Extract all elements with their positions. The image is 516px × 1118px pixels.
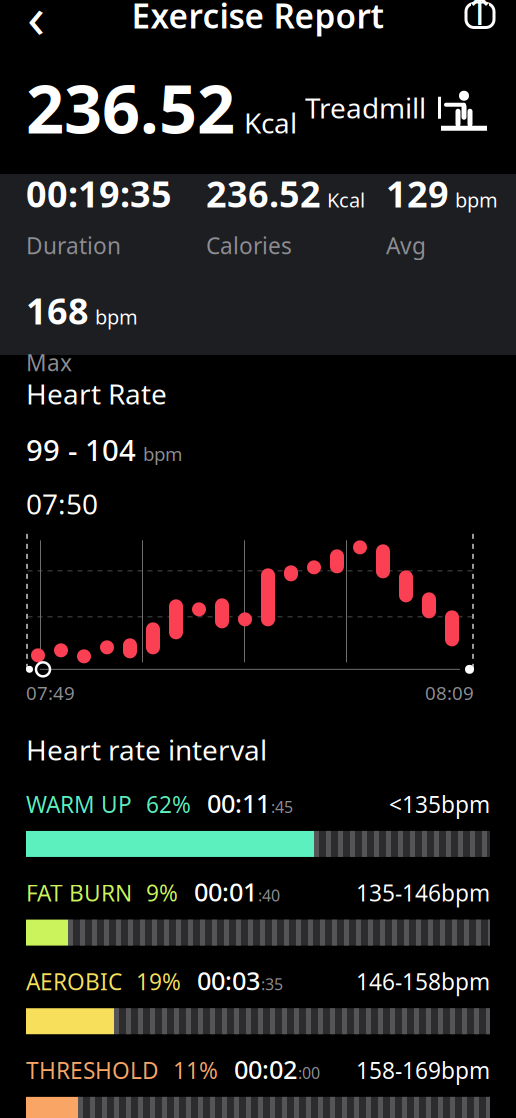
button[interactable]: AEROBIC <box>26 964 490 1034</box>
staticText: 129 <box>386 170 449 217</box>
staticText: :40 <box>258 885 280 906</box>
staticText: 08:09 <box>425 680 474 705</box>
staticText: 00:02 <box>234 1052 297 1086</box>
staticText: bpm <box>455 186 498 213</box>
staticText: Heart rate interval <box>26 731 267 768</box>
staticText: :35 <box>261 973 283 995</box>
staticText: Avg <box>386 230 426 260</box>
staticText: Duration <box>26 230 121 260</box>
staticText: AEROBIC <box>26 966 122 996</box>
staticText: 236.52 <box>206 170 321 217</box>
staticText: 07:49 <box>26 680 75 705</box>
staticText: 00:19:35 <box>26 170 172 217</box>
staticText: 00:01 <box>194 875 257 908</box>
button[interactable]: FAT BURN <box>26 875 490 945</box>
staticText: 135-146bpm <box>356 878 490 908</box>
staticText: Kcal <box>244 104 297 141</box>
staticText: 9% <box>146 878 178 908</box>
staticText: 99 - 104 <box>26 430 136 469</box>
staticText: 62% <box>146 789 191 819</box>
staticText: 236.52 <box>26 63 235 152</box>
staticText: Treadmill <box>305 89 426 126</box>
staticText: <135bpm <box>389 789 490 819</box>
staticText: 158-169bpm <box>356 1055 490 1085</box>
staticText: 00:11 <box>207 786 270 820</box>
staticText: 00:03 <box>197 964 260 997</box>
staticText: FAT BURN <box>26 878 132 908</box>
staticText: 11% <box>173 1055 218 1085</box>
staticText: :45 <box>271 796 293 817</box>
staticText: Max <box>26 347 72 377</box>
staticText: 168 <box>26 286 89 334</box>
staticText: bpm <box>95 303 138 330</box>
staticText: Exercise Report <box>131 0 384 38</box>
staticText: Kcal <box>327 186 365 213</box>
staticText: 146-158bpm <box>356 966 490 996</box>
staticText: :00 <box>298 1062 320 1083</box>
button[interactable]: Share <box>458 0 502 37</box>
staticText: ↑ <box>463 0 497 34</box>
staticText: THRESHOLD <box>26 1055 159 1085</box>
staticText: 19% <box>136 966 181 996</box>
staticText: bpm <box>143 441 182 466</box>
staticText: ‹ <box>27 0 45 54</box>
staticText: WARM UP <box>26 789 132 819</box>
staticText: Calories <box>206 230 292 260</box>
staticText: Heart Rate <box>26 375 167 412</box>
staticText: 07:50 <box>26 485 98 522</box>
button[interactable]: Back <box>14 0 58 37</box>
button[interactable]: THRESHOLD <box>26 1052 490 1118</box>
button[interactable]: WARM UP <box>26 786 490 857</box>
